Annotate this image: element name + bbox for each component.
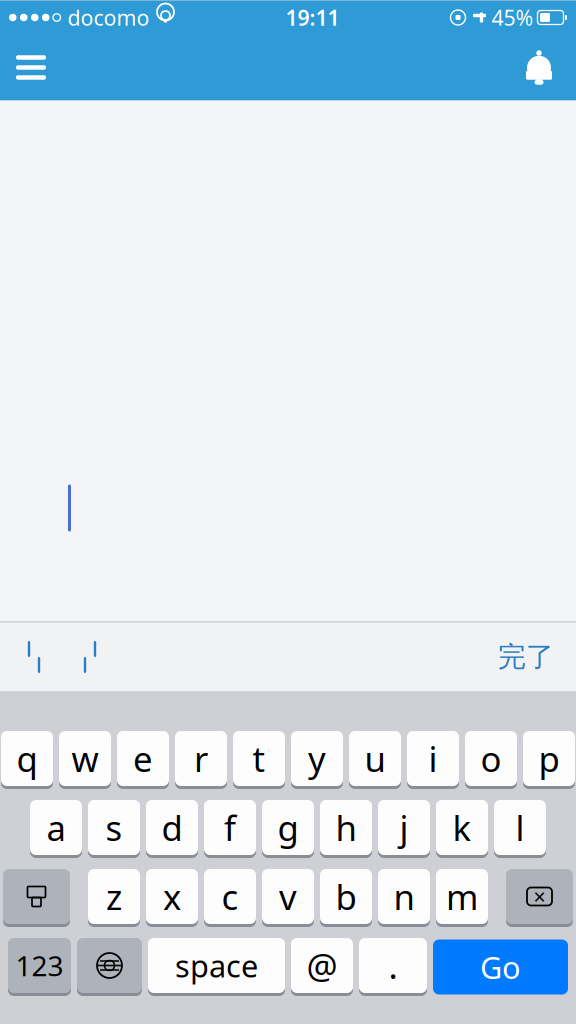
button[interactable]: space <box>148 938 285 996</box>
staticText: r <box>194 735 208 781</box>
button[interactable]: q <box>1 731 53 789</box>
staticText: k <box>452 804 471 850</box>
staticText: x <box>163 873 181 919</box>
button[interactable]: a <box>30 800 82 858</box>
staticText: f <box>224 804 236 850</box>
button[interactable]: Go <box>433 938 568 996</box>
button[interactable]: Previous field <box>6 632 62 682</box>
button[interactable]: Switch keyboard <box>77 938 142 996</box>
staticText: l <box>515 804 524 850</box>
staticText: @ <box>306 942 337 988</box>
staticText: 45% <box>491 3 533 32</box>
staticText: 19:11 <box>285 3 339 32</box>
staticText: Go <box>480 947 521 987</box>
staticText: w <box>71 735 98 781</box>
button[interactable]: . <box>359 938 427 996</box>
staticText: n <box>393 873 414 919</box>
button[interactable]: s <box>88 800 140 858</box>
button[interactable]: @ <box>291 938 353 996</box>
button[interactable]: o <box>465 731 517 789</box>
staticText: v <box>279 873 297 919</box>
button[interactable]: p <box>523 731 575 789</box>
button[interactable]: z <box>88 869 140 927</box>
button[interactable]: k <box>436 800 488 858</box>
staticText: space <box>175 945 258 986</box>
button[interactable]: Shift <box>3 869 70 927</box>
button[interactable]: d <box>146 800 198 858</box>
staticText: b <box>335 873 356 919</box>
staticText: i <box>428 735 437 781</box>
button[interactable]: w <box>59 731 111 789</box>
staticText: c <box>221 873 238 919</box>
button[interactable]: i <box>407 731 459 789</box>
staticText: h <box>335 804 356 850</box>
button[interactable]: b <box>320 869 372 927</box>
staticText: s <box>105 804 122 850</box>
staticText: t <box>252 735 265 781</box>
button[interactable]: x <box>146 869 198 927</box>
staticText: docomo <box>67 3 149 32</box>
staticText: p <box>538 735 559 781</box>
staticText: 完了 <box>498 640 554 674</box>
button[interactable]: f <box>204 800 256 858</box>
button[interactable]: 完了 <box>482 632 570 682</box>
button[interactable]: m <box>436 869 488 927</box>
staticText: o <box>480 735 501 781</box>
staticText: d <box>161 804 182 850</box>
button[interactable]: l <box>494 800 546 858</box>
button[interactable]: t <box>233 731 285 789</box>
staticText: a <box>46 804 65 850</box>
button[interactable]: r <box>175 731 227 789</box>
staticText: e <box>133 735 153 781</box>
staticText: × <box>533 882 545 911</box>
staticText: y <box>308 735 326 781</box>
staticText: m <box>446 873 478 919</box>
staticText: q <box>16 735 37 781</box>
button[interactable]: Menu <box>2 38 60 96</box>
button[interactable]: n <box>378 869 430 927</box>
staticText: u <box>364 735 385 781</box>
button[interactable]: v <box>262 869 314 927</box>
staticText: 123 <box>15 947 63 984</box>
staticText: . <box>388 942 397 988</box>
button[interactable]: u <box>349 731 401 789</box>
button[interactable]: g <box>262 800 314 858</box>
button[interactable]: j <box>378 800 430 858</box>
staticText: j <box>399 804 408 850</box>
button[interactable]: e <box>117 731 169 789</box>
staticText: z <box>106 873 122 919</box>
button[interactable]: c <box>204 869 256 927</box>
button[interactable]: Notifications <box>510 38 568 96</box>
button[interactable]: Next field <box>62 632 118 682</box>
button[interactable]: Delete <box>506 869 573 927</box>
staticText: g <box>277 804 298 850</box>
button[interactable]: h <box>320 800 372 858</box>
button[interactable]: 123 <box>8 938 71 996</box>
button[interactable]: y <box>291 731 343 789</box>
